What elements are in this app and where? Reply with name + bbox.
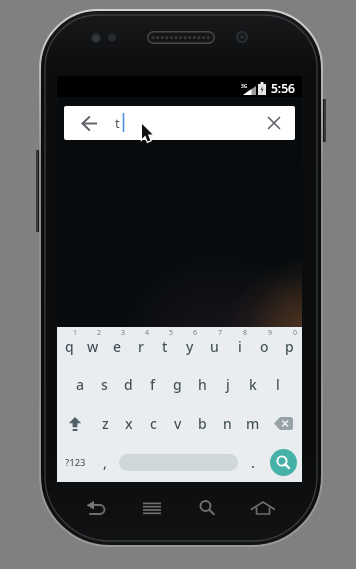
button[interactable]: c bbox=[141, 404, 165, 443]
button[interactable]: x bbox=[117, 404, 141, 443]
staticText: u bbox=[210, 337, 219, 356]
staticText: v bbox=[174, 414, 182, 433]
button[interactable] bbox=[57, 404, 93, 443]
staticText: 6 bbox=[193, 328, 198, 338]
button[interactable]: r bbox=[129, 327, 153, 365]
staticText: c bbox=[150, 414, 157, 433]
staticText: 9 bbox=[268, 328, 273, 338]
staticText: d bbox=[124, 375, 133, 394]
button[interactable]: o bbox=[252, 327, 277, 365]
staticText: 3 bbox=[121, 328, 126, 338]
staticText: t bbox=[162, 337, 168, 356]
staticText: 8 bbox=[243, 328, 248, 338]
staticText: p bbox=[285, 337, 294, 356]
button[interactable]: u bbox=[202, 327, 227, 365]
staticText: 7 bbox=[218, 328, 223, 338]
staticText: r bbox=[138, 337, 144, 356]
button[interactable]: g bbox=[165, 365, 190, 404]
button[interactable]: n bbox=[215, 404, 240, 443]
staticText: . bbox=[251, 453, 255, 472]
staticText: j bbox=[226, 375, 230, 394]
staticText: 2 bbox=[97, 328, 102, 338]
staticText: z bbox=[102, 414, 109, 433]
staticText: 5:56 bbox=[271, 80, 295, 96]
staticText: m bbox=[246, 414, 260, 433]
button[interactable]: s bbox=[92, 365, 116, 404]
staticText: 0 bbox=[293, 328, 298, 338]
button[interactable]: b bbox=[190, 404, 215, 443]
button[interactable]: h bbox=[190, 365, 215, 404]
staticText: 5 bbox=[169, 328, 174, 338]
staticText: 4 bbox=[145, 328, 150, 338]
staticText: 3G bbox=[241, 83, 248, 90]
staticText: g bbox=[173, 375, 182, 394]
staticText: w bbox=[87, 337, 99, 356]
staticText: f bbox=[150, 375, 155, 394]
button[interactable]: l bbox=[265, 365, 290, 404]
button[interactable]: f bbox=[140, 365, 165, 404]
staticText: ?123 bbox=[65, 456, 86, 469]
staticText: h bbox=[198, 375, 207, 394]
staticText: b bbox=[198, 414, 207, 433]
button[interactable]: ?123 bbox=[57, 443, 93, 482]
staticText: n bbox=[223, 414, 232, 433]
button[interactable]: y bbox=[177, 327, 202, 365]
button[interactable]: . bbox=[240, 443, 265, 482]
button[interactable] bbox=[75, 109, 103, 137]
button[interactable]: j bbox=[215, 365, 240, 404]
staticText: l bbox=[276, 375, 280, 394]
button[interactable]: w bbox=[81, 327, 105, 365]
staticText: q bbox=[65, 337, 74, 356]
button[interactable]: q bbox=[57, 327, 81, 365]
button[interactable]: d bbox=[116, 365, 140, 404]
button[interactable] bbox=[265, 443, 302, 482]
staticText: y bbox=[186, 337, 194, 356]
button[interactable]: i bbox=[227, 327, 252, 365]
staticText: 1 bbox=[73, 328, 78, 338]
staticText: a bbox=[76, 375, 85, 394]
staticText: i bbox=[238, 337, 242, 356]
staticText: s bbox=[101, 375, 108, 394]
button[interactable]: z bbox=[93, 404, 117, 443]
button[interactable]: v bbox=[165, 404, 190, 443]
staticText: o bbox=[260, 337, 269, 356]
button[interactable] bbox=[117, 443, 240, 482]
button[interactable] bbox=[265, 404, 302, 443]
staticText: e bbox=[113, 337, 122, 356]
button[interactable]: , bbox=[93, 443, 117, 482]
staticText: x bbox=[125, 414, 133, 433]
button[interactable] bbox=[261, 110, 287, 136]
staticText: k bbox=[249, 375, 257, 394]
button[interactable]: m bbox=[240, 404, 265, 443]
staticText: , bbox=[103, 453, 107, 472]
button[interactable]: p bbox=[277, 327, 302, 365]
staticText: t bbox=[115, 114, 120, 132]
button[interactable]: a bbox=[68, 365, 92, 404]
button[interactable]: e bbox=[105, 327, 129, 365]
button[interactable]: t bbox=[153, 327, 177, 365]
button[interactable]: k bbox=[240, 365, 265, 404]
